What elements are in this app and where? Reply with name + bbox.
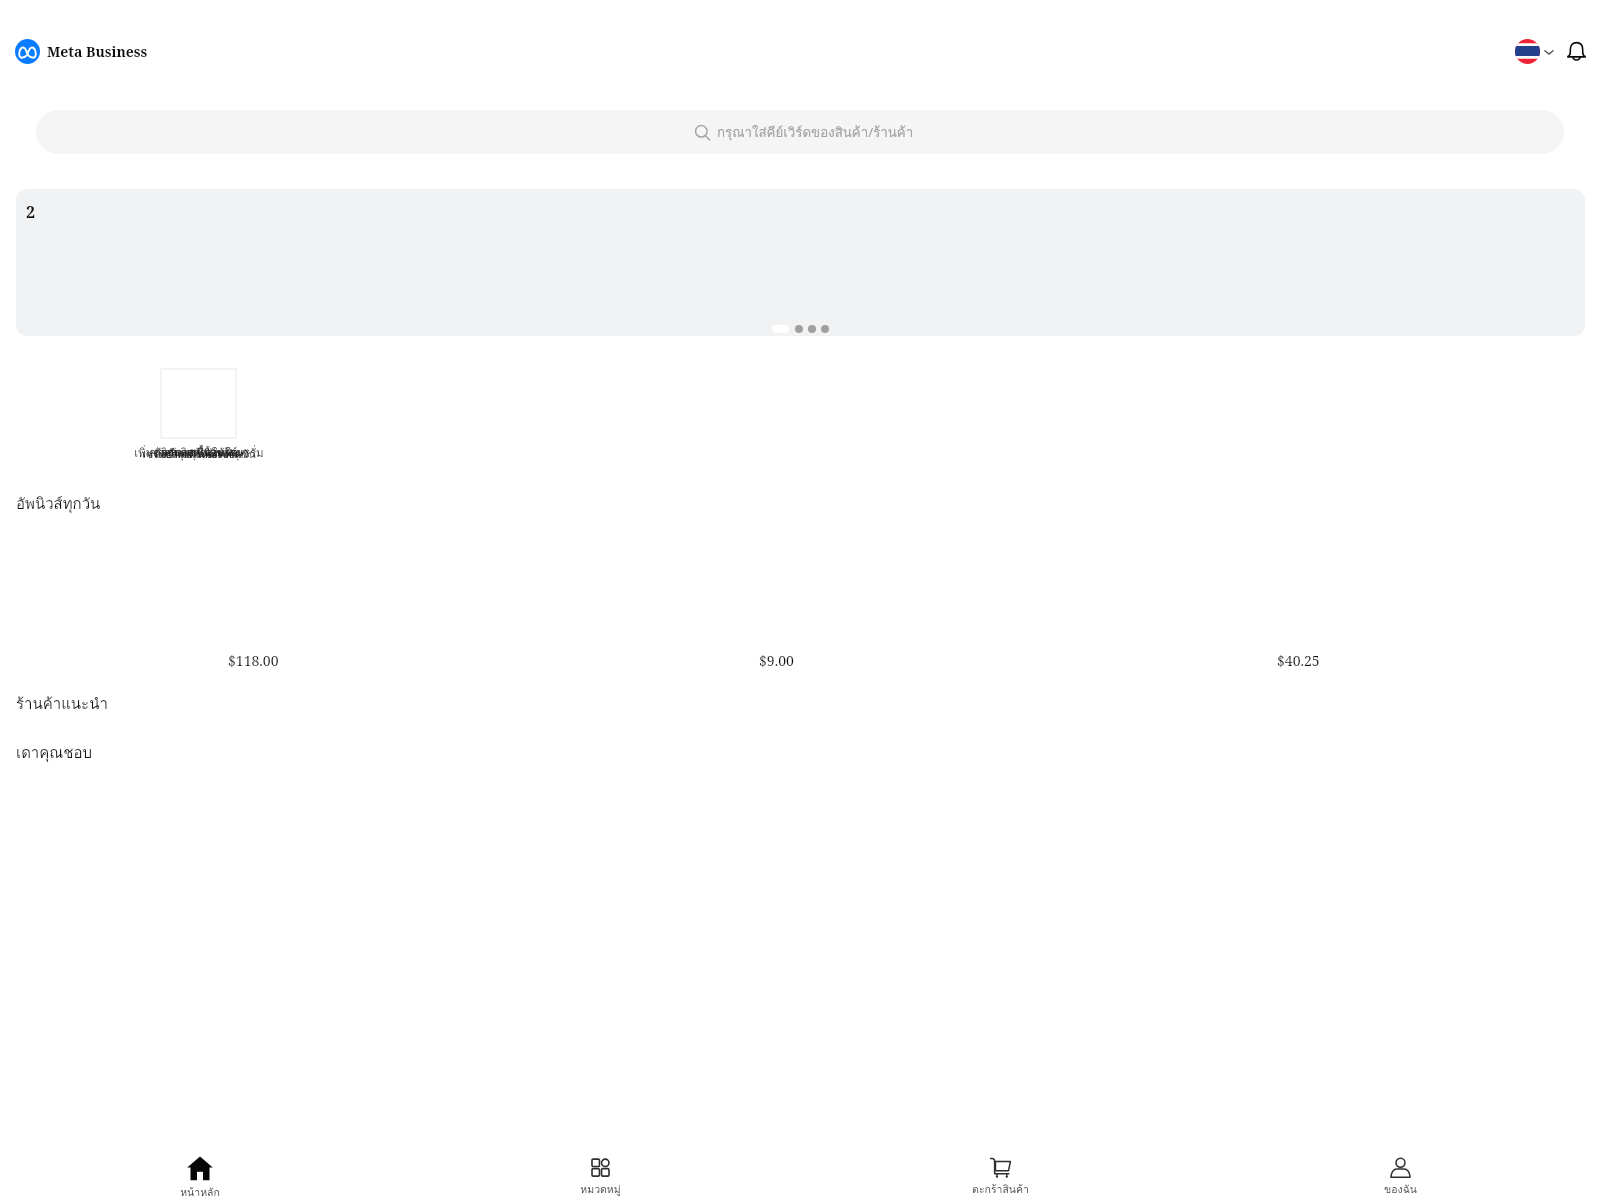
button[interactable]: อัพนิวส์ทุกวัน (16, 492, 101, 516)
button[interactable]: เดาคุณชอบ (16, 741, 92, 765)
button[interactable]: $9.00 (759, 651, 794, 670)
staticText: กรุณาใส่คีย์เวิร์ดของสินค้า/ร้านค้า (717, 122, 914, 143)
button[interactable]: 2 (16, 189, 1585, 336)
staticText: Meta Business (47, 42, 148, 61)
staticText: เจลล้างหน้าอ่อนโยน (155, 445, 243, 461)
staticText: หมวดหมู่ (580, 1181, 621, 1198)
staticText: มอยส์เจอไรเซอร์บำรุง (154, 447, 244, 462)
staticText: เซรั่มบำรุงผิวหน้า เข้มข้น (142, 446, 256, 463)
button[interactable]: ของฉัน (1200, 1140, 1600, 1200)
button[interactable]: กรุณาใส่คีย์เวิร์ดของสินค้า/ร้านค้า (36, 110, 1564, 154)
button[interactable]: $40.25 (1277, 651, 1320, 670)
staticText: ลิปสติกเนื้อแมตต์ (160, 444, 238, 461)
button[interactable]: $118.00 (228, 651, 279, 670)
staticText: ของฉัน (1384, 1181, 1417, 1198)
button[interactable]: ตะกร้าสินค้า (800, 1140, 1200, 1200)
button[interactable]: Notifications (1564, 39, 1589, 64)
staticText: แป้งพัฟคุมมันติดทน (161, 448, 238, 462)
staticText: เพิ่มความสดชื่นให้ผิวเซรั่ม (134, 444, 264, 462)
staticText: 2 (26, 201, 36, 223)
button[interactable]: Change language / region (1515, 39, 1555, 64)
button[interactable]: ร้านค้าแนะนำ (16, 692, 108, 716)
staticText: หน้าหลัก (180, 1184, 220, 1200)
staticText: ครีมกันแดดเนื้อบางเบา (149, 445, 249, 461)
button[interactable]: หน้าหลัก (0, 1140, 400, 1200)
button[interactable]: Meta Business (15, 39, 148, 64)
button[interactable]: หมวดหมู่ (400, 1140, 800, 1200)
staticText: ตะกร้าสินค้า (972, 1181, 1029, 1198)
